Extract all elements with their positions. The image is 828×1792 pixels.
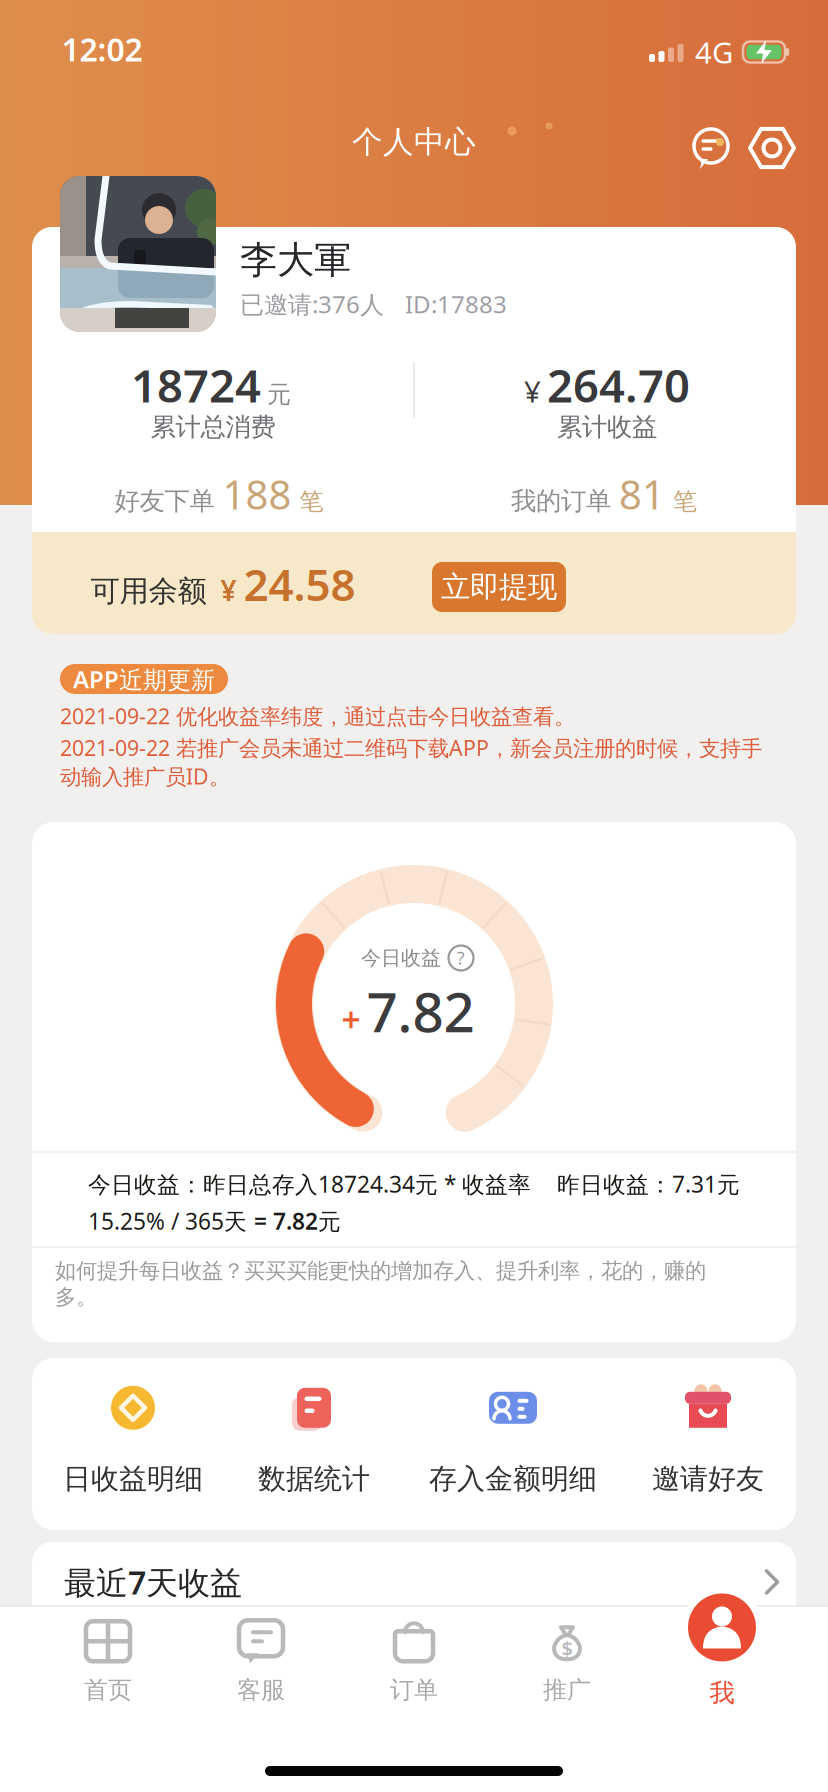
staticText: 15.25% / 365天 = 7.82元 xyxy=(88,1206,341,1236)
button[interactable]: 客服 xyxy=(206,1612,316,1712)
button[interactable]: 邀请好友 xyxy=(652,1384,764,1496)
staticText: 李大軍 xyxy=(240,237,351,283)
button[interactable]: 订单 xyxy=(359,1612,469,1712)
staticText: + xyxy=(341,997,360,1041)
button[interactable]: APP近期更新 xyxy=(60,664,228,694)
staticText: ? xyxy=(457,946,465,969)
button[interactable]: 存入金额明细 xyxy=(429,1384,597,1496)
staticText: 笔 xyxy=(299,487,323,516)
staticText: 推广 xyxy=(543,1675,591,1705)
staticText: 好友下单 xyxy=(114,485,214,517)
staticText: 7.82 xyxy=(366,975,474,1047)
staticText: ¥ xyxy=(206,572,243,609)
staticText: 最近7天收益 xyxy=(64,1561,242,1603)
staticText: 188 xyxy=(222,467,291,520)
staticText: 可用余额 xyxy=(90,573,206,609)
staticText: ¥ xyxy=(524,372,541,411)
button[interactable]: 数据统计 xyxy=(258,1384,370,1496)
staticText: 24.58 xyxy=(243,555,355,613)
staticText: 订单 xyxy=(390,1675,438,1705)
button[interactable]: Messages xyxy=(683,120,739,176)
staticText: 笔 xyxy=(673,487,697,516)
button[interactable]: 首页 xyxy=(53,1612,163,1712)
staticText: 264.70 xyxy=(547,355,690,415)
button[interactable]: 立即提现 xyxy=(432,562,566,612)
staticText: 12:02 xyxy=(61,28,142,70)
button[interactable]: Settings xyxy=(744,120,800,176)
staticText: 2021-09-22 若推广会员未通过二维码下载APP，新会员注册的时候，支持手… xyxy=(60,734,762,790)
staticText: 日收益明细 xyxy=(63,1462,203,1496)
staticText: 今日收益：昨日总存入18724.34元 * 收益率 xyxy=(88,1169,531,1199)
button[interactable]: 最近7天收益 xyxy=(32,1542,796,1606)
staticText: 昨日收益：7.31元 xyxy=(557,1169,740,1199)
staticText: 18724 xyxy=(131,355,261,415)
staticText: 数据统计 xyxy=(258,1462,370,1496)
staticText: 我的订单 xyxy=(511,485,611,517)
staticText: 立即提现 xyxy=(441,569,557,605)
staticText: 已邀请:376人 ID:17883 xyxy=(240,288,507,320)
staticText: 累计总消费 xyxy=(150,411,275,442)
staticText: 存入金额明细 xyxy=(429,1462,597,1496)
button[interactable]: $ xyxy=(512,1612,622,1712)
staticText: 4G xyxy=(695,32,733,71)
staticText: 首页 xyxy=(84,1675,132,1705)
button[interactable]: 我 xyxy=(667,1583,777,1713)
staticText: $ xyxy=(561,1635,572,1662)
button[interactable]: 日收益明细 xyxy=(63,1384,203,1496)
staticText: 81 xyxy=(619,467,665,520)
staticText: 如何提升每日收益？买买买能更快的增加存入、提升利率，花的，赚的多。 xyxy=(55,1258,706,1310)
staticText: 个人中心 xyxy=(352,123,476,161)
staticText: APP近期更新 xyxy=(73,663,215,695)
staticText: 邀请好友 xyxy=(652,1462,764,1496)
staticText: 元 xyxy=(267,380,291,409)
staticText: 客服 xyxy=(237,1675,285,1705)
staticText: 我 xyxy=(709,1677,734,1708)
staticText: 2021-09-22 优化收益率纬度，通过点击今日收益查看。 xyxy=(60,702,575,730)
staticText: 累计收益 xyxy=(557,411,657,442)
staticText: 今日收益 xyxy=(361,946,441,970)
